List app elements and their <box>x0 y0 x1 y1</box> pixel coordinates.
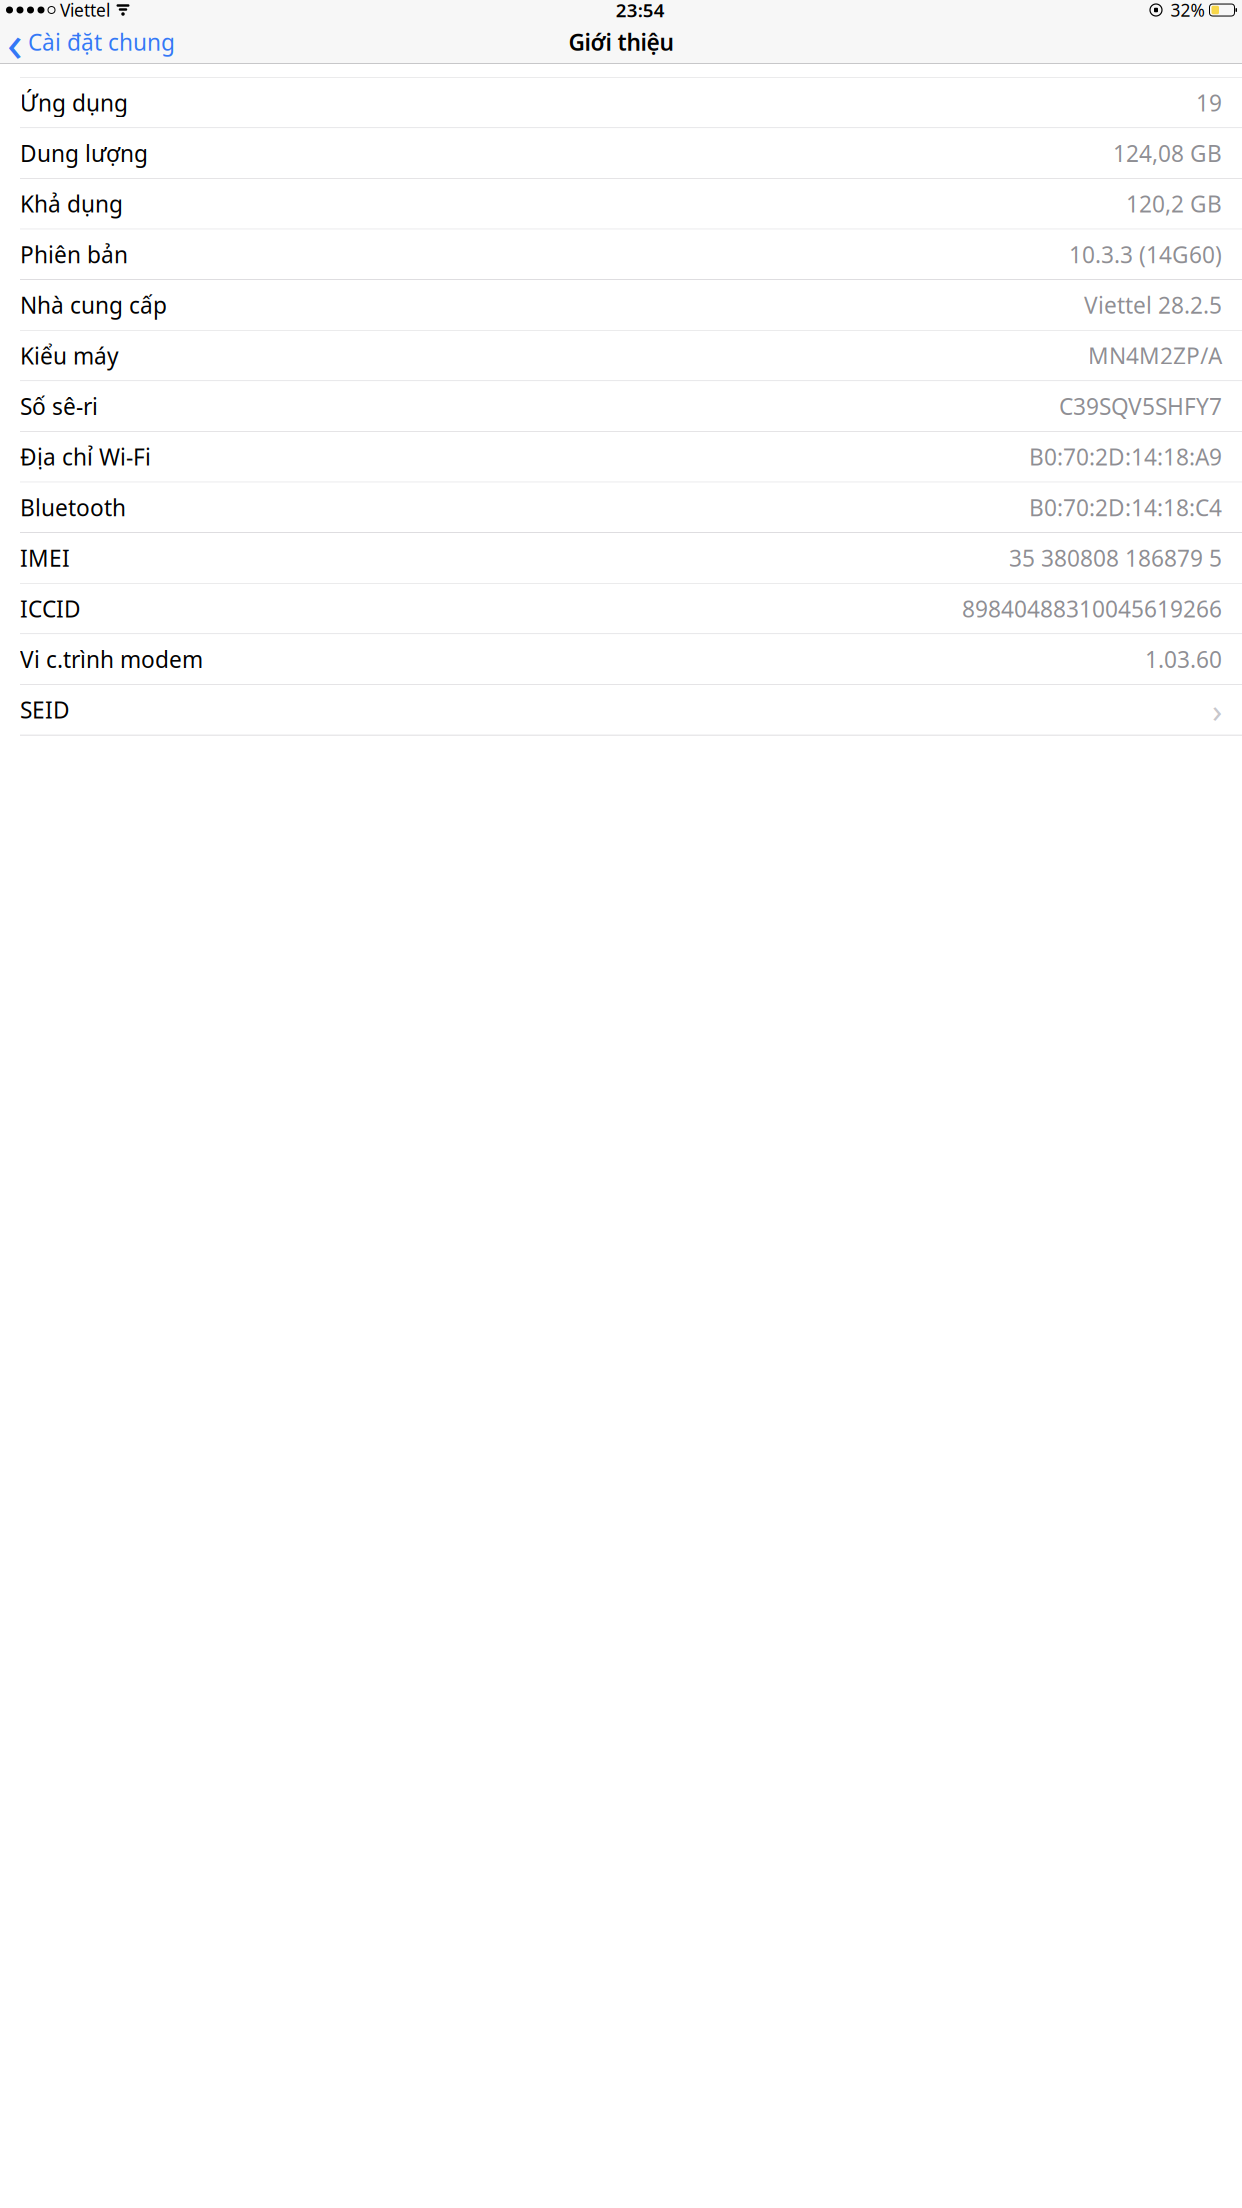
staticText: SEID <box>20 695 70 725</box>
button[interactable]: Nhà cung cấp <box>0 280 1242 331</box>
staticText: 89840488310045619266 <box>962 593 1222 624</box>
staticText: Ứng dụng <box>20 87 128 118</box>
staticText: ‹ <box>7 8 23 76</box>
staticText: Khả dụng <box>20 189 123 219</box>
staticText: Giới thiệu <box>568 27 673 57</box>
staticText: Địa chỉ Wi-Fi <box>20 442 151 472</box>
staticText: Viettel 28.2.5 <box>1084 290 1222 320</box>
staticText: Bluetooth <box>20 492 126 522</box>
staticText: 19 <box>1196 87 1222 118</box>
staticText: 1.03.60 <box>1145 644 1222 674</box>
staticText: 23:54 <box>616 0 665 22</box>
staticText: C39SQV5SHFY7 <box>1059 391 1222 421</box>
button[interactable]: Địa chỉ Wi-Fi <box>0 432 1242 482</box>
staticText: ICCID <box>20 593 81 624</box>
staticText: 32% <box>1165 0 1204 21</box>
staticText: Viettel <box>55 0 110 21</box>
button[interactable]: SEID <box>0 685 1242 735</box>
button[interactable]: IMEI <box>0 533 1242 584</box>
button[interactable]: Vi c.trình modem <box>0 634 1242 685</box>
staticText: Phiên bản <box>20 239 128 269</box>
button[interactable]: Ứng dụng <box>0 78 1242 128</box>
staticText: B0:70:2D:14:18:C4 <box>1029 492 1222 522</box>
button[interactable]: Dung lượng <box>0 128 1242 179</box>
button[interactable]: Kiểu máy <box>0 331 1242 381</box>
staticText: Cài đặt chung <box>28 27 175 57</box>
staticText: 10.3.3 (14G60) <box>1069 239 1222 269</box>
staticText: 120,2 GB <box>1126 189 1222 219</box>
staticText: Vi c.trình modem <box>20 644 203 674</box>
button[interactable]: Khả dụng <box>0 179 1242 229</box>
staticText: Nhà cung cấp <box>20 290 167 320</box>
button[interactable]: ICCID <box>0 584 1242 634</box>
staticText: Dung lượng <box>20 138 148 168</box>
staticText: › <box>1212 688 1222 732</box>
staticText: Số sê-ri <box>20 391 98 421</box>
staticText: IMEI <box>20 543 70 573</box>
staticText: MN4M2ZP/A <box>1088 340 1222 371</box>
button[interactable]: Số sê-ri <box>0 381 1242 432</box>
staticText: B0:70:2D:14:18:A9 <box>1029 442 1222 472</box>
button[interactable]: Phiên bản <box>0 229 1242 280</box>
staticText: 35 380808 186879 5 <box>1009 543 1222 573</box>
button[interactable]: Bluetooth <box>0 482 1242 533</box>
staticText: Kiểu máy <box>20 340 119 371</box>
button[interactable]: ‹ <box>0 20 183 64</box>
staticText: 124,08 GB <box>1113 138 1222 168</box>
